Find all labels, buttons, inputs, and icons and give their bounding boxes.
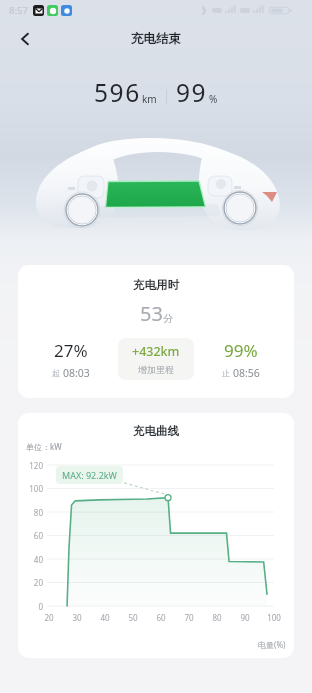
staticText: 90 [234, 612, 256, 623]
staticText: 0 [18, 601, 43, 612]
staticText: 80 [18, 507, 43, 518]
staticText: 99 [176, 76, 208, 109]
staticText: 止 [222, 368, 230, 378]
staticText: 分 [163, 312, 173, 325]
staticText: 20 [38, 612, 60, 623]
staticText: 80 [206, 612, 228, 623]
staticText: 60 [150, 612, 172, 623]
staticText: 充电曲线 [133, 424, 179, 438]
staticText: 40 [18, 554, 43, 565]
staticText: 单位：kW [26, 441, 62, 452]
staticText: +432km [132, 343, 180, 360]
staticText: 电量(%) [258, 639, 286, 650]
staticText: 增加里程 [138, 364, 174, 375]
staticText: 50 [122, 612, 144, 623]
staticText: 30 [66, 612, 88, 623]
staticText: 100 [18, 483, 43, 494]
staticText: 40 [94, 612, 116, 623]
staticText: 27% [54, 339, 88, 362]
staticText: km [142, 92, 157, 106]
staticText: MAX: 92.2kW [62, 469, 117, 481]
staticText: 70 [178, 612, 200, 623]
staticText: % [209, 92, 218, 106]
button[interactable]: Back [10, 24, 40, 54]
staticText: 99% [224, 339, 258, 362]
staticText: 8:57 [9, 4, 28, 17]
staticText: 60 [18, 530, 43, 541]
staticText: 100 [263, 612, 285, 623]
staticText: 20 [18, 577, 43, 588]
staticText: 53 [140, 300, 163, 327]
staticText: 充电用时 [133, 278, 179, 292]
staticText: 08:03 [63, 366, 90, 380]
staticText: 120 [18, 460, 43, 471]
staticText: 596 [94, 76, 141, 109]
staticText: 起 [52, 368, 60, 378]
staticText: 充电结束 [131, 31, 181, 47]
staticText: 08:56 [233, 366, 260, 380]
